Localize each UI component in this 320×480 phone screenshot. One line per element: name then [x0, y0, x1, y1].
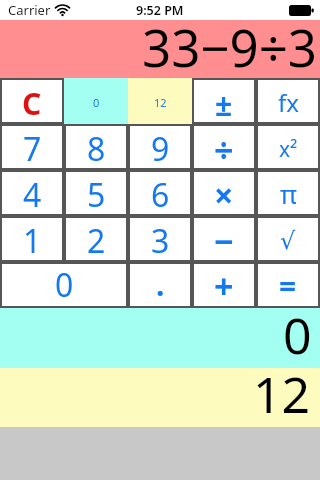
staticText: 0 [283, 301, 312, 361]
button[interactable]: x² [256, 124, 320, 170]
button[interactable]: ± [192, 78, 256, 124]
staticText: Carrier [8, 1, 51, 19]
staticText: 9 [151, 127, 170, 171]
staticText: x² [279, 135, 298, 164]
staticText: = [279, 265, 297, 306]
button[interactable]: π [256, 170, 320, 216]
button[interactable]: 0 [0, 262, 128, 308]
button[interactable]: 6 [128, 170, 192, 216]
staticText: 0 [93, 95, 100, 110]
staticText: 12 [253, 360, 311, 419]
staticText: 4 [23, 173, 42, 217]
staticText: 33−9÷3 [142, 12, 318, 70]
button[interactable]: √ [256, 216, 320, 262]
button[interactable]: 9 [128, 124, 192, 170]
staticText: 5 [87, 173, 106, 217]
staticText: 8 [87, 127, 106, 171]
button[interactable]: + [192, 262, 256, 308]
staticText: + [214, 263, 234, 309]
staticText: 9:52 PM [136, 2, 184, 19]
button[interactable]: ÷ [192, 124, 256, 170]
staticText: ± [215, 84, 233, 125]
staticText: 6 [151, 173, 170, 217]
button[interactable]: 4 [0, 170, 64, 216]
staticText: 3 [151, 219, 170, 263]
button[interactable]: 5 [64, 170, 128, 216]
button[interactable]: 0 [64, 78, 128, 124]
staticText: 12 [154, 95, 167, 110]
button[interactable]: − [192, 216, 256, 262]
staticText: 1 [23, 219, 42, 263]
staticText: ÷ [214, 127, 234, 173]
button[interactable]: 1 [0, 216, 64, 262]
button[interactable]: 2 [64, 216, 128, 262]
button[interactable]: fx [256, 78, 320, 124]
button[interactable]: × [192, 170, 256, 216]
button[interactable]: 7 [0, 124, 64, 170]
staticText: × [214, 172, 234, 218]
staticText: . [156, 264, 165, 305]
staticText: 0 [55, 263, 74, 307]
button[interactable]: C [0, 78, 64, 124]
button[interactable]: . [128, 262, 192, 308]
button[interactable]: = [256, 262, 320, 308]
staticText: C [22, 83, 42, 124]
staticText: √ [280, 227, 296, 255]
staticText: π [280, 176, 297, 211]
button[interactable]: 12 [128, 78, 192, 124]
staticText: 2 [87, 219, 106, 263]
button[interactable]: 8 [64, 124, 128, 170]
staticText: − [214, 218, 234, 264]
staticText: fx [278, 86, 299, 119]
staticText: 7 [23, 127, 42, 171]
button[interactable]: 3 [128, 216, 192, 262]
